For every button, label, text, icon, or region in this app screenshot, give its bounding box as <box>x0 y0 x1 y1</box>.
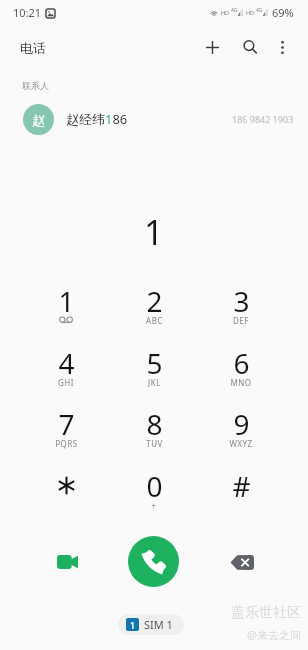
button[interactable]: 7 <box>23 399 109 457</box>
staticText: TUV <box>146 438 163 449</box>
button[interactable] <box>23 461 109 519</box>
button[interactable]: 3 <box>198 276 284 334</box>
staticText: DEF <box>233 315 249 326</box>
button[interactable]: More options <box>264 29 300 65</box>
button[interactable]: Video call <box>45 540 89 584</box>
staticText: 3 <box>233 282 250 320</box>
staticText: 4 <box>58 344 75 382</box>
button[interactable]: 1 <box>118 614 184 635</box>
staticText: 5 <box>146 344 163 382</box>
staticText: WXYZ <box>229 438 253 449</box>
staticText: 8 <box>146 405 163 443</box>
button[interactable]: 9 <box>198 399 284 457</box>
staticText: 69% <box>272 5 294 20</box>
staticText: 联系人 <box>22 80 49 91</box>
staticText: 盖乐世社区 <box>231 604 301 622</box>
staticText: 9 <box>233 405 250 443</box>
staticText: 赵经纬186 <box>66 110 128 128</box>
staticText: JKL <box>148 377 161 388</box>
button[interactable]: Call <box>128 536 179 587</box>
button[interactable]: Delete <box>220 540 264 584</box>
button[interactable]: 1 <box>23 276 109 334</box>
button[interactable]: # <box>198 461 284 519</box>
staticText: 186 9842 1903 <box>232 113 294 125</box>
staticText: 1 <box>58 282 75 320</box>
staticText: 4G <box>256 7 263 14</box>
staticText: 1 <box>144 209 164 255</box>
staticText: 7 <box>58 405 75 443</box>
button[interactable]: 2 <box>111 276 197 334</box>
staticText: 电话 <box>20 40 46 56</box>
staticText: 6 <box>233 344 250 382</box>
staticText: 10:21 <box>13 5 42 20</box>
button[interactable]: 5 <box>111 338 197 396</box>
staticText: 赵 <box>32 112 45 128</box>
staticText: MNO <box>230 377 252 388</box>
staticText: HD <box>221 9 230 16</box>
button[interactable]: Add contact <box>194 29 230 65</box>
button[interactable]: 0 <box>111 461 197 519</box>
staticText: 1 <box>130 619 136 631</box>
button[interactable]: 6 <box>198 338 284 396</box>
button[interactable]: 4 <box>23 338 109 396</box>
staticText: SIM 1 <box>144 617 173 632</box>
button[interactable]: 8 <box>111 399 197 457</box>
staticText: # <box>232 467 251 505</box>
staticText: 0 <box>146 467 163 505</box>
button[interactable]: 赵 <box>0 100 308 138</box>
staticText: 4G <box>231 7 238 14</box>
staticText: HD <box>246 9 255 16</box>
staticText: GHI <box>58 377 74 388</box>
button[interactable]: Search <box>232 29 268 65</box>
staticText: 2 <box>146 282 163 320</box>
staticText: PQRS <box>55 438 78 449</box>
staticText: + <box>151 500 157 511</box>
staticText: @来去之间 <box>247 627 301 642</box>
staticText: ABC <box>146 315 163 326</box>
